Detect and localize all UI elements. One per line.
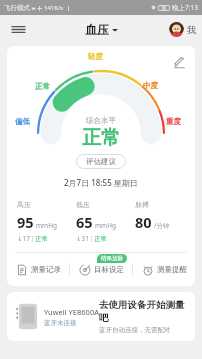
staticText: 轻度	[88, 52, 103, 61]
staticText: 测量提醒	[157, 265, 187, 274]
staticText: 65	[76, 212, 93, 232]
staticText: mmHg	[95, 221, 116, 230]
staticText: 中度	[143, 81, 158, 90]
staticText: 目标设定	[94, 265, 124, 274]
staticText: 蓝牙自动连接，无需配对	[99, 326, 171, 334]
button[interactable]: Menu	[6, 17, 30, 41]
staticText: Yuwell YE8600A	[44, 307, 99, 317]
staticText: ↓31	[76, 234, 89, 243]
staticText: 脉搏	[135, 200, 149, 209]
staticText: 蓝牙未连接	[44, 319, 77, 327]
button[interactable]: 血压	[85, 22, 118, 37]
staticText: 低压	[76, 200, 90, 209]
staticText: 正常	[94, 235, 107, 243]
staticText: 正常	[35, 82, 50, 91]
button[interactable]: Edit	[171, 54, 188, 71]
staticText: 我	[187, 24, 196, 35]
staticText: 正常	[35, 235, 48, 243]
staticText: /分钟	[154, 221, 170, 230]
staticText: 高压	[17, 200, 31, 209]
staticText: 去使用设备开始测量吧	[99, 299, 188, 323]
staticText: ↓17	[17, 234, 30, 243]
staticText: 综合水平	[86, 116, 116, 125]
staticText: 偏低	[15, 117, 30, 126]
staticText: mmHg	[36, 221, 57, 230]
staticText: 晚上7:13	[172, 3, 198, 12]
staticText: 2月7日 18:55 星期日	[64, 177, 138, 188]
staticText: 78	[161, 5, 167, 11]
staticText: 飞行模式	[4, 4, 30, 12]
staticText: 80	[135, 212, 152, 232]
staticText: 评估建议	[86, 157, 116, 166]
button[interactable]: 评估建议	[76, 154, 126, 169]
staticText: 重度	[166, 117, 181, 126]
button[interactable]: 目标设定	[70, 253, 132, 286]
staticText: 测量记录	[31, 265, 61, 274]
staticText: 141K/s	[44, 4, 64, 12]
staticText: 正常	[82, 126, 120, 150]
button[interactable]: 测量记录	[7, 253, 69, 286]
staticText: 结果达标	[101, 255, 123, 262]
button[interactable]: Yuwell YE8600A	[7, 292, 195, 341]
staticText: 95	[17, 212, 34, 232]
button[interactable]: 测量提醒	[133, 253, 195, 286]
button[interactable]: 我	[169, 22, 196, 37]
staticText: 血压	[85, 22, 109, 37]
